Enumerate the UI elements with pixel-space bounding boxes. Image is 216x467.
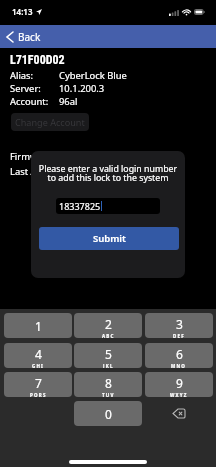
staticText: 2 — [105, 316, 112, 332]
staticText: JKL — [103, 363, 114, 368]
staticText: Account: — [10, 95, 49, 108]
staticText: CyberLock Blue — [59, 69, 127, 82]
staticText: GHI — [32, 363, 45, 368]
button[interactable]: 4 — [4, 343, 72, 368]
staticText: Change Account — [15, 116, 85, 128]
staticText: PQRS — [30, 392, 47, 397]
staticText: ABC — [102, 333, 115, 338]
staticText: 5 — [105, 346, 112, 362]
staticText: L71F00D02 — [10, 53, 65, 67]
button[interactable]: 9 — [145, 372, 213, 397]
button[interactable]: 0 — [74, 401, 142, 426]
button[interactable]: 6 — [145, 343, 213, 368]
button[interactable]: 5 — [74, 343, 142, 368]
staticText: DEF — [173, 333, 185, 338]
button[interactable]: 8 — [74, 372, 142, 397]
button[interactable]: 18337825 — [56, 198, 160, 214]
button[interactable]: Submit — [39, 227, 179, 250]
staticText: 14:13 — [12, 6, 33, 17]
staticText: 1 — [35, 318, 42, 334]
staticText: Firmware: — [10, 150, 55, 163]
staticText: 9 — [176, 375, 183, 391]
staticText: 18337825 — [59, 200, 101, 212]
button[interactable]: 3 — [145, 313, 213, 338]
staticText: MNO — [171, 363, 187, 368]
staticText: 4 — [35, 346, 42, 362]
staticText: 7 — [35, 375, 42, 391]
staticText: 10.1.200.3 — [59, 82, 105, 95]
staticText: TUV — [102, 392, 115, 397]
staticText: Please enter a valid login number to add… — [31, 163, 185, 183]
staticText: Server: — [10, 82, 41, 95]
staticText: 8 — [105, 375, 112, 391]
button[interactable]: Back — [0, 25, 216, 48]
button[interactable]: 2 — [74, 313, 142, 338]
staticText: 0 — [105, 406, 112, 422]
staticText: Submit — [93, 232, 126, 245]
staticText: 3 — [176, 316, 183, 332]
staticText: Back — [18, 30, 41, 44]
button[interactable]: Backspace — [145, 401, 213, 426]
staticText: Alias: — [10, 69, 34, 82]
button[interactable]: Change Account — [11, 113, 89, 131]
button[interactable]: 1 — [4, 313, 72, 338]
staticText: Last Audit: — [10, 165, 57, 178]
staticText: 6 — [176, 346, 183, 362]
staticText: WXYZ — [170, 392, 188, 397]
staticText: 96al — [59, 95, 78, 108]
button[interactable]: 7 — [4, 372, 72, 397]
